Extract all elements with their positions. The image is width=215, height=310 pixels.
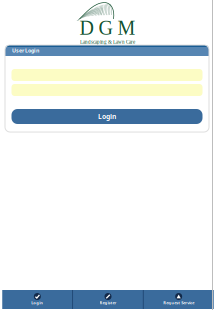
- staticText: Register: [99, 300, 116, 305]
- button[interactable]: Request Service: [144, 290, 213, 309]
- staticText: Login: [98, 112, 116, 121]
- button[interactable]: Login: [2, 290, 72, 309]
- staticText: Login: [31, 300, 43, 305]
- staticText: User Login: [12, 47, 39, 54]
- staticText: Landscaping & Lawn Care: [80, 39, 135, 45]
- button[interactable]: Login: [5, 109, 209, 124]
- staticText: D G M: [79, 17, 135, 39]
- button[interactable]: Register: [73, 290, 143, 309]
- staticText: Request Service: [163, 300, 194, 305]
